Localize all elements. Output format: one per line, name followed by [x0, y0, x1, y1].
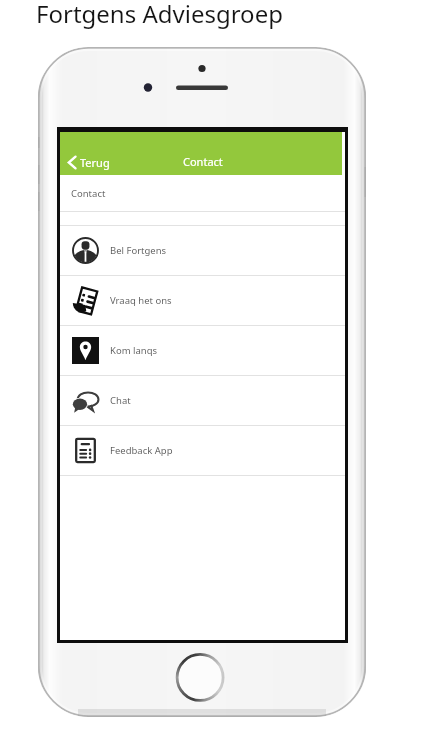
staticText: Kom lanqs [110, 344, 158, 357]
button[interactable]: Terug [60, 149, 120, 175]
button[interactable]: Bel Fortgens [60, 226, 345, 275]
staticText: Bel Fortgens [110, 244, 167, 257]
staticText: Fortgens Adviesgroep [36, 0, 283, 30]
staticText: Contact [183, 154, 223, 169]
staticText: Feedback App [110, 444, 173, 457]
button[interactable]: Chat [60, 376, 345, 425]
button[interactable]: Kom lanqs [60, 326, 345, 375]
staticText: Chat [110, 394, 131, 407]
button[interactable]: Feedback App [60, 426, 345, 475]
staticText: Terug [80, 155, 110, 170]
staticText: Vraaq het ons [110, 294, 172, 307]
staticText: Contact [71, 187, 106, 200]
button[interactable]: Vraaq het ons [60, 276, 345, 325]
